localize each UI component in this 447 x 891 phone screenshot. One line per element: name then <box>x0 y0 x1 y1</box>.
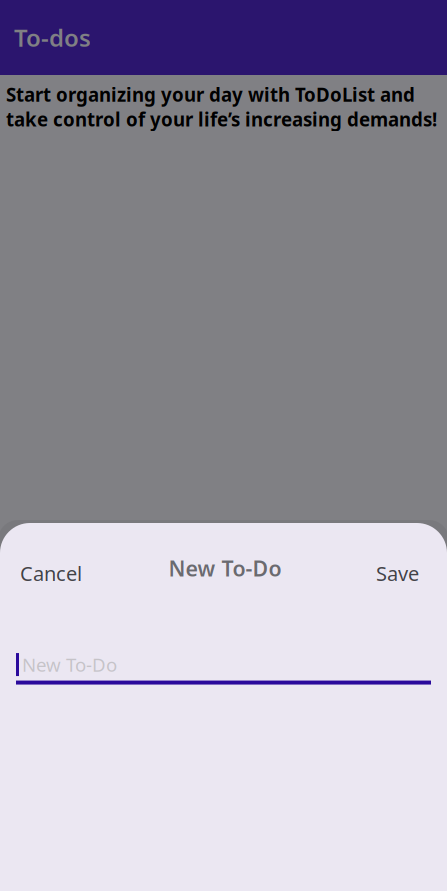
staticText: Save <box>376 560 419 587</box>
staticText: New To-Do <box>168 554 281 582</box>
staticText: To-dos <box>14 22 91 53</box>
staticText: New To-Do <box>22 652 117 677</box>
staticText: Cancel <box>20 560 82 587</box>
button[interactable]: Save <box>356 548 447 599</box>
staticText: Start organizing your day with ToDoList … <box>6 82 437 132</box>
button[interactable]: Cancel <box>0 548 102 599</box>
